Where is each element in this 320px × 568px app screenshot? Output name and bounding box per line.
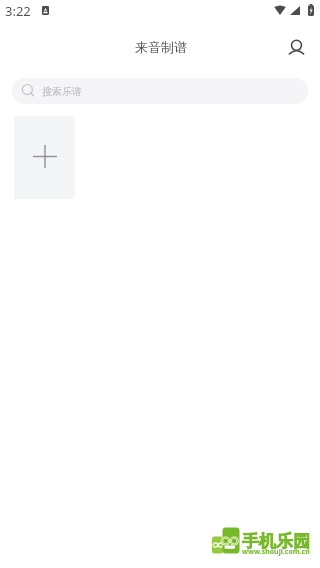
- button[interactable]: Add score: [14, 116, 75, 199]
- staticText: 3:22: [5, 2, 31, 20]
- button[interactable]: Account: [281, 32, 311, 62]
- button[interactable]: 搜索乐谱: [12, 78, 308, 104]
- staticText: 搜索乐谱: [42, 85, 82, 98]
- staticText: www.shouji.com.cn: [242, 547, 310, 557]
- staticText: 手机乐园: [242, 531, 310, 552]
- staticText: 来音制谱: [135, 39, 187, 55]
